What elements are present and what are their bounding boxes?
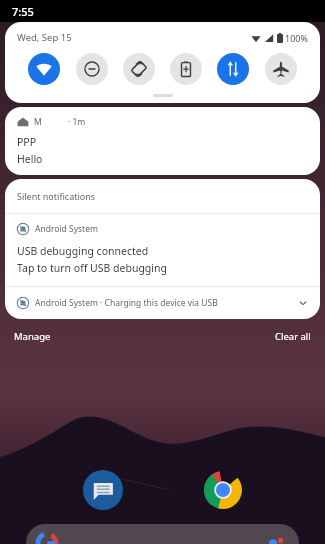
- staticText: · 1m: [68, 116, 86, 128]
- staticText: USB debugging connected: [17, 244, 149, 258]
- staticText: Manage: [14, 330, 51, 343]
- button[interactable]: Battery Saver: [170, 53, 202, 85]
- button[interactable]: Airplane mode: [265, 53, 297, 85]
- staticText: Tap to turn off USB debugging: [17, 261, 167, 275]
- staticText: Hello: [17, 152, 43, 166]
- button[interactable]: Wi-Fi: [28, 53, 60, 85]
- staticText: 100%: [285, 32, 308, 44]
- staticText: Wed, Sep 15: [17, 31, 72, 44]
- button[interactable]: Android System · Charging this device vi…: [5, 287, 320, 319]
- button[interactable]: M: [5, 107, 320, 175]
- staticText: PPP: [17, 135, 37, 149]
- staticText: Android System: [35, 223, 98, 235]
- button[interactable]: Silent notifications: [5, 179, 320, 213]
- staticText: Clear all: [275, 330, 311, 343]
- staticText: Silent notifications: [17, 190, 96, 202]
- button[interactable]: Clear all: [261, 326, 325, 349]
- button[interactable]: Mobile data: [217, 53, 249, 85]
- button[interactable]: Chrome: [203, 470, 243, 510]
- staticText: Android System · Charging this device vi…: [35, 297, 218, 309]
- button[interactable]: Auto-rotate: [123, 53, 155, 85]
- staticText: 7:55: [12, 4, 34, 19]
- button[interactable]: Do not disturb: [76, 53, 108, 85]
- button[interactable]: Messages: [83, 470, 123, 510]
- button[interactable]: Android System: [5, 214, 320, 286]
- button[interactable]: [26, 524, 299, 544]
- button[interactable]: Manage: [0, 326, 65, 349]
- staticText: M: [34, 116, 42, 128]
